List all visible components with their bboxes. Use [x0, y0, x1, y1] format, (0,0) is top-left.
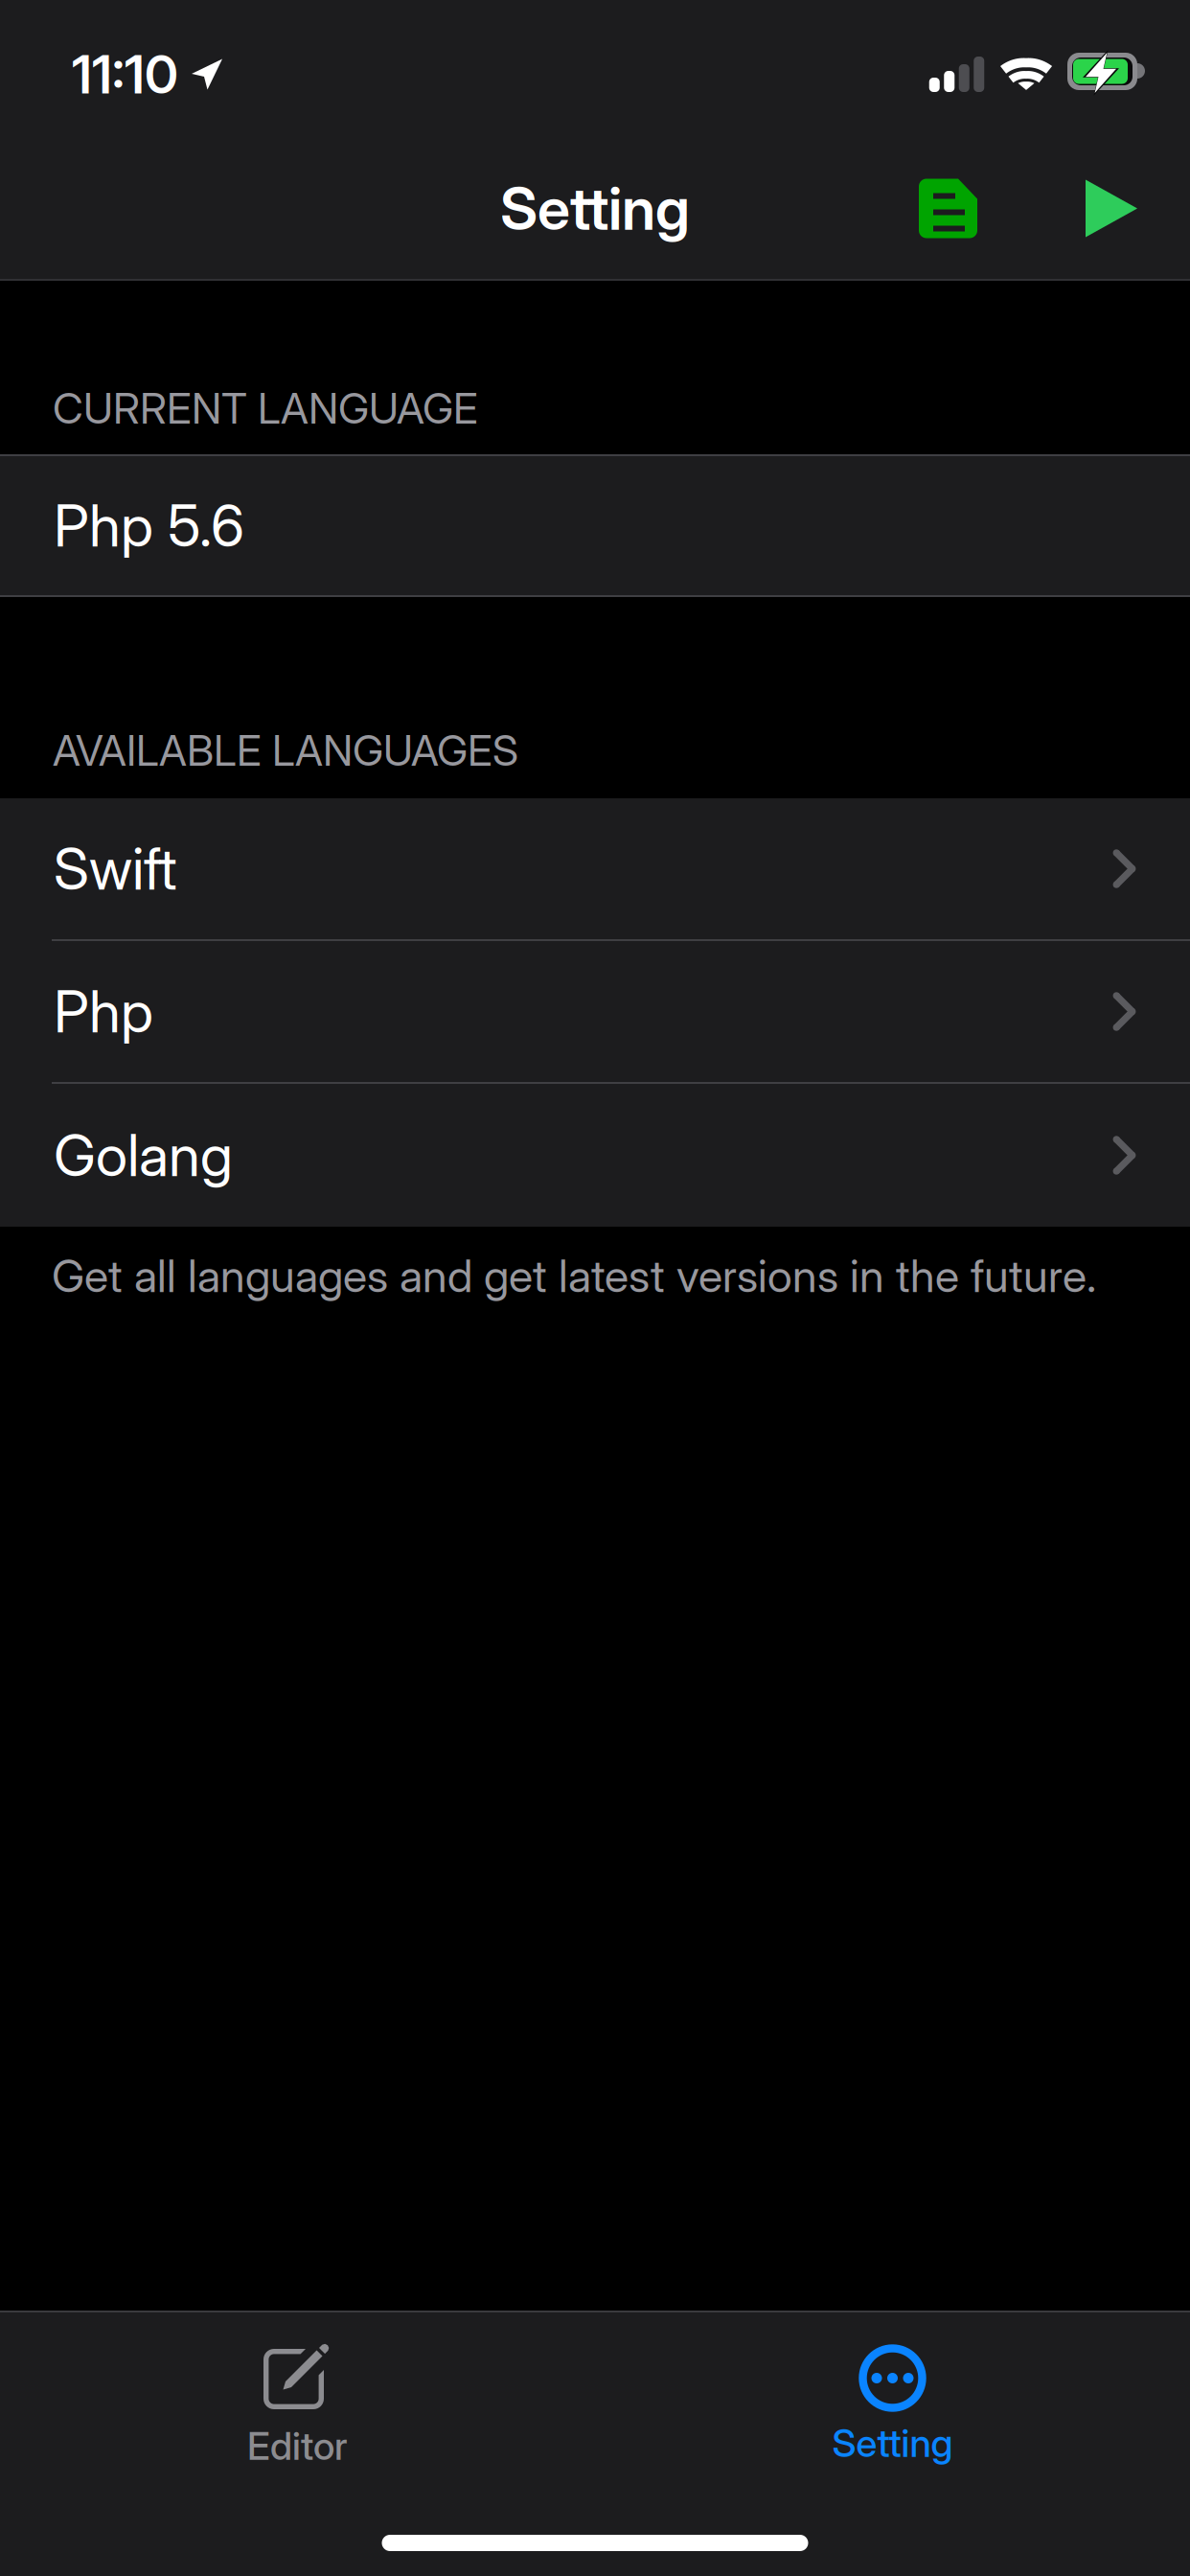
button[interactable]: Editor: [0, 2341, 595, 2469]
staticText: Php 5.6: [54, 491, 244, 560]
staticText: 11:10: [72, 43, 178, 106]
staticText: Editor: [247, 2423, 348, 2469]
staticText: Swift: [54, 834, 177, 904]
staticText: Setting: [832, 2420, 953, 2466]
button[interactable]: Setting: [595, 2344, 1190, 2466]
button[interactable]: Php 5.6: [0, 456, 1190, 595]
staticText: Php: [54, 977, 153, 1046]
button[interactable]: Run: [1059, 153, 1164, 264]
button[interactable]: Php: [0, 941, 1190, 1082]
staticText: Setting: [500, 173, 690, 244]
staticText: Golang: [54, 1120, 233, 1190]
button[interactable]: Golang: [0, 1084, 1190, 1227]
staticText: AVAILABLE LANGUAGES: [53, 725, 518, 776]
staticText: Get all languages and get latest version…: [52, 1249, 1096, 1303]
staticText: CURRENT LANGUAGE: [53, 383, 478, 434]
button[interactable]: Documents: [891, 153, 1005, 264]
button[interactable]: Swift: [0, 798, 1190, 939]
